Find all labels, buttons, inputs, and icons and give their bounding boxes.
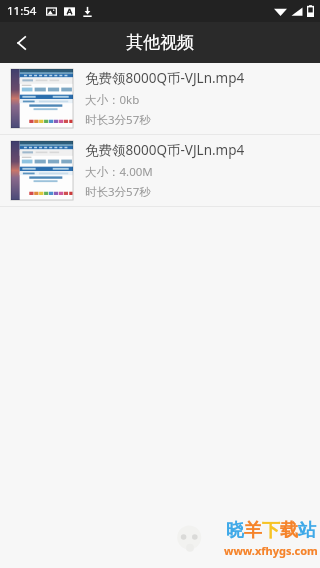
staticText: 时长3分57秒 [85,184,151,200]
staticText: www.xfhygs.com [224,543,318,558]
staticText: 免费领8000Q币-VJLn.mp4 [85,69,245,87]
staticText: 大小：4.00M [85,164,153,180]
button[interactable]: Back [0,22,44,63]
staticText: 晓 [226,519,244,542]
staticText: 羊 [244,519,262,542]
staticText: 下 [262,519,280,542]
staticText: 时长3分57秒 [85,112,151,128]
staticText: 免费领8000Q币-VJLn.mp4 [85,141,245,159]
staticText: 11:54 [7,3,37,19]
staticText: 其他视频 [126,32,194,53]
staticText: 大小：0kb [85,92,140,108]
button[interactable]: 免费领8000Q币-VJLn.mp4 [0,63,320,134]
staticText: 载 [280,519,298,542]
staticText: 站 [298,519,316,542]
button[interactable]: 免费领8000Q币-VJLn.mp4 [0,135,320,206]
